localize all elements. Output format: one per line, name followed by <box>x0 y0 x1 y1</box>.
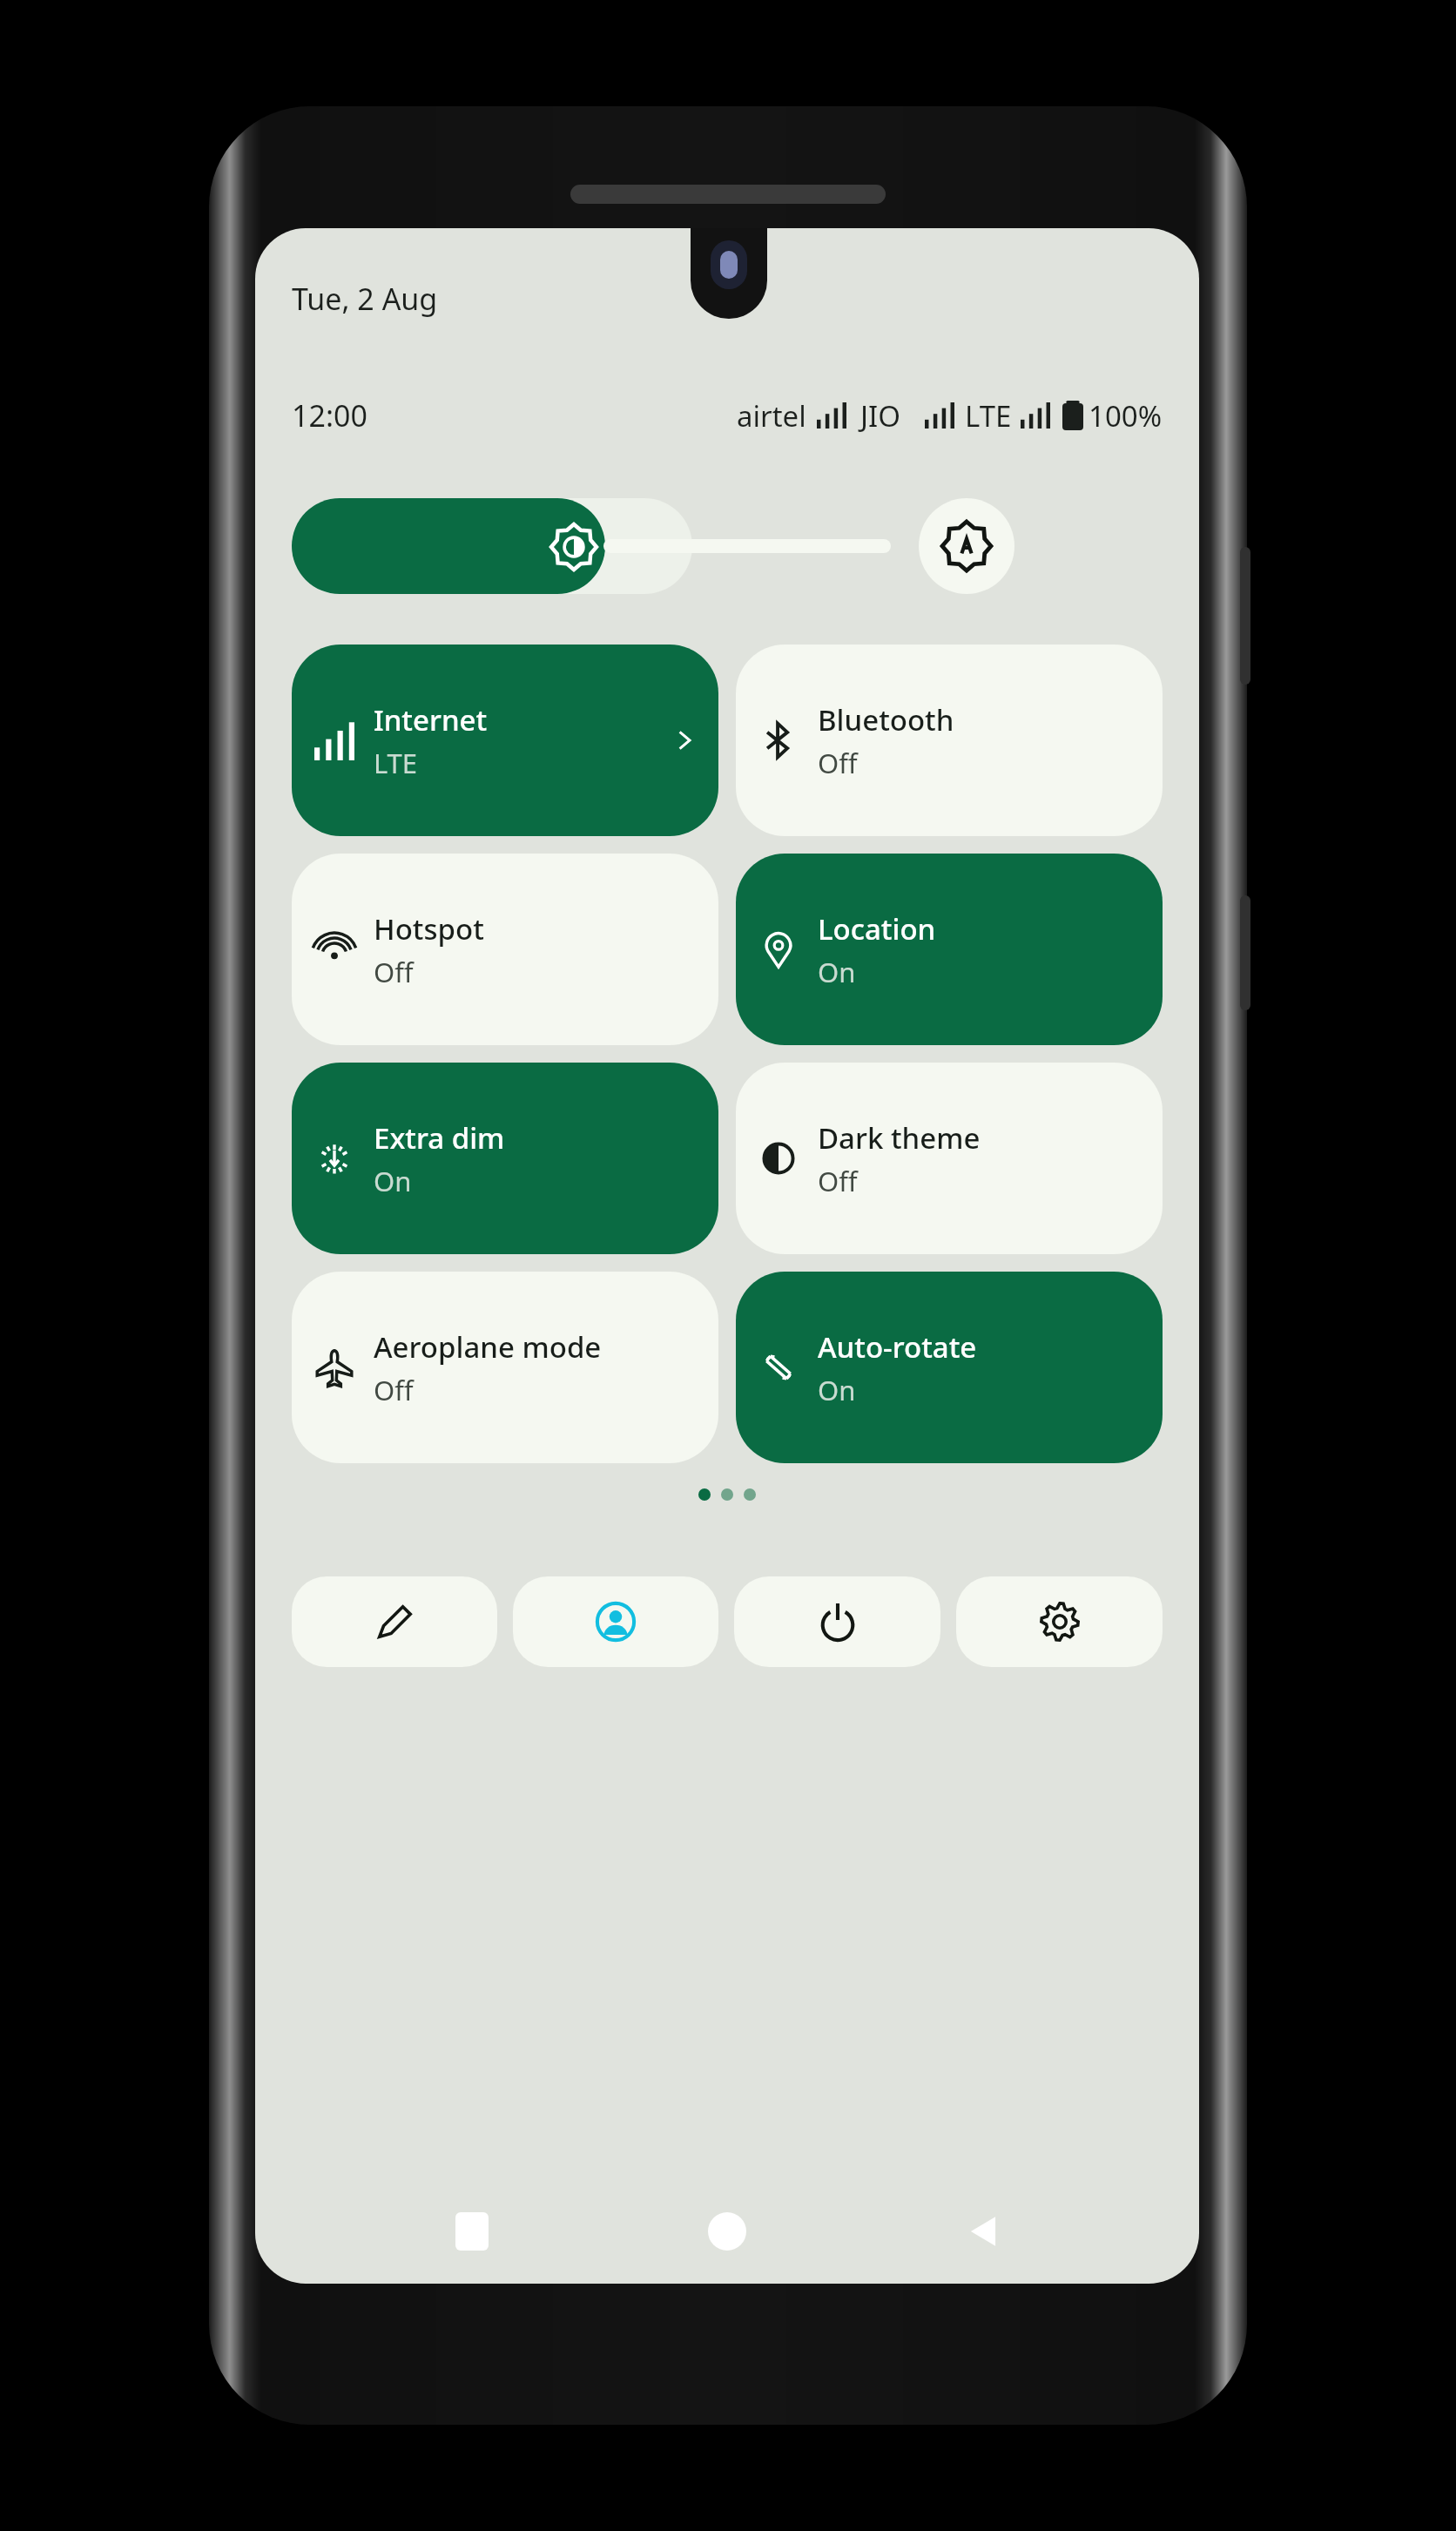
button[interactable]: Extra dim <box>292 1063 718 1254</box>
button[interactable]: Home <box>688 2192 766 2271</box>
staticText: Tue, 2 Aug <box>292 279 438 319</box>
button[interactable]: Auto brightness <box>919 498 1014 594</box>
button[interactable]: Aeroplane mode <box>292 1272 718 1463</box>
staticText: Off <box>374 1372 414 1408</box>
staticText: On <box>374 1163 412 1199</box>
staticText: 100% <box>1089 396 1163 435</box>
button[interactable]: Location <box>736 854 1163 1045</box>
staticText: Auto-rotate <box>818 1327 977 1367</box>
button[interactable]: Dark theme <box>736 1063 1163 1254</box>
staticText: Off <box>374 954 414 990</box>
staticText: LTE <box>965 396 1012 435</box>
button[interactable]: Settings <box>956 1576 1163 1667</box>
staticText: Location <box>818 909 936 948</box>
button[interactable]: Auto-rotate <box>736 1272 1163 1463</box>
button[interactable]: Hotspot <box>292 854 718 1045</box>
staticText: On <box>818 1372 856 1408</box>
button[interactable]: Edit <box>292 1576 497 1667</box>
staticText: LTE <box>374 745 418 781</box>
button[interactable]: Bluetooth <box>736 645 1163 836</box>
staticText: Extra dim <box>374 1118 505 1158</box>
staticText: Internet <box>374 700 488 739</box>
staticText: 12:00 <box>292 395 367 435</box>
staticText: Dark theme <box>818 1118 981 1158</box>
staticText: Bluetooth <box>818 700 954 739</box>
staticText: airtel <box>737 396 806 435</box>
button[interactable]: Internet <box>292 645 718 836</box>
staticText: JIO <box>860 396 900 435</box>
button[interactable]: User <box>513 1576 718 1667</box>
staticText: Aeroplane mode <box>374 1327 602 1367</box>
button[interactable]: Recents <box>433 2192 511 2271</box>
staticText: Off <box>818 1163 858 1199</box>
staticText: Off <box>818 745 858 781</box>
staticText: On <box>818 954 856 990</box>
button[interactable] <box>292 498 692 594</box>
staticText: Hotspot <box>374 909 484 948</box>
button[interactable]: Power <box>734 1576 940 1667</box>
button[interactable]: Back <box>944 2192 1022 2271</box>
